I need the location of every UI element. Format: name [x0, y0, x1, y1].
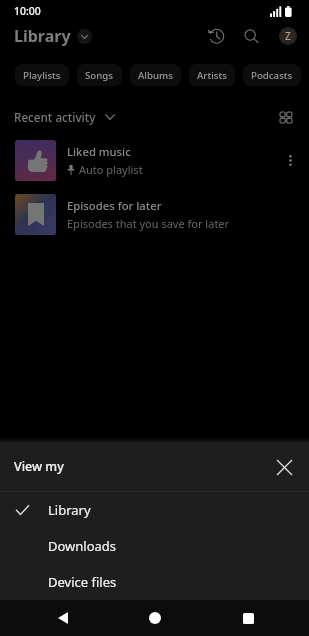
- staticText: Library: [14, 25, 71, 47]
- button[interactable]: Playlists: [15, 64, 69, 86]
- staticText: Auto playlist: [79, 162, 143, 177]
- staticText: Artists: [197, 69, 227, 82]
- staticText: Downloads: [48, 537, 117, 555]
- staticText: Episodes for later: [67, 198, 162, 213]
- staticText: Library: [48, 501, 91, 519]
- button[interactable]: Recent activity: [14, 109, 115, 125]
- button[interactable]: Library: [0, 492, 309, 528]
- button[interactable]: Home: [142, 605, 168, 631]
- button[interactable]: History: [201, 22, 230, 50]
- button[interactable]: Back: [50, 605, 76, 631]
- staticText: Albums: [138, 69, 173, 82]
- button[interactable]: Albums: [130, 64, 181, 86]
- staticText: Z: [285, 29, 291, 43]
- button[interactable]: More options: [271, 141, 309, 179]
- button[interactable]: Device files: [0, 564, 309, 600]
- staticText: Episodes that you save for later: [67, 216, 230, 231]
- button[interactable]: Search: [236, 22, 265, 50]
- staticText: View my: [14, 458, 64, 475]
- staticText: Device files: [48, 573, 117, 591]
- staticText: Recent activity: [14, 109, 96, 125]
- button[interactable]: Downloads: [0, 528, 309, 564]
- staticText: 10:00: [14, 4, 41, 18]
- button[interactable]: Artists: [189, 64, 235, 86]
- staticText: Liked music: [67, 144, 131, 159]
- button[interactable]: Account: [279, 27, 297, 45]
- staticText: Playlists: [23, 69, 61, 82]
- button[interactable]: Liked music: [0, 133, 309, 187]
- button[interactable]: Library: [14, 25, 92, 47]
- button[interactable]: Songs: [77, 64, 122, 86]
- button[interactable]: Close: [267, 450, 301, 484]
- button[interactable]: Podcasts: [243, 64, 301, 86]
- staticText: Podcasts: [251, 69, 293, 82]
- button[interactable]: Episodes for later: [0, 187, 309, 241]
- staticText: Songs: [85, 69, 114, 82]
- button[interactable]: Recents: [235, 605, 261, 631]
- button[interactable]: Grid view: [273, 104, 299, 130]
